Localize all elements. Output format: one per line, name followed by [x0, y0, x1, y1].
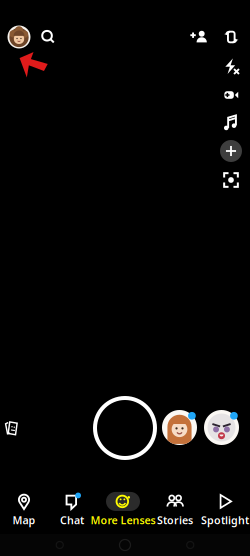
button[interactable]: Flash off — [218, 53, 244, 79]
button[interactable]: Lens: long hair — [162, 410, 197, 445]
button[interactable]: Flip camera — [218, 24, 244, 50]
button[interactable]: Timer — [218, 82, 244, 108]
staticText: Stories — [157, 513, 193, 527]
button[interactable]: Music — [218, 110, 244, 136]
button[interactable]: Lens: white face — [204, 410, 239, 445]
staticText: Chat — [60, 513, 84, 527]
staticText: Spotlight — [201, 513, 249, 527]
button[interactable]: Add friends — [186, 24, 212, 50]
button[interactable]: Search — [35, 24, 61, 50]
button[interactable]: Spotlight — [200, 488, 250, 531]
button[interactable]: More Lenses — [96, 488, 150, 531]
button[interactable]: Chat — [48, 488, 96, 531]
button[interactable]: Memories — [0, 416, 24, 440]
staticText: Map — [12, 513, 35, 527]
button[interactable]: Map — [0, 488, 48, 531]
button[interactable]: Scan — [218, 167, 244, 193]
button[interactable]: Capture — [95, 398, 155, 458]
staticText: More Lenses — [90, 513, 155, 527]
button[interactable]: Add — [218, 138, 244, 164]
button[interactable]: Stories — [150, 488, 200, 531]
button[interactable]: Profile — [4, 22, 34, 52]
